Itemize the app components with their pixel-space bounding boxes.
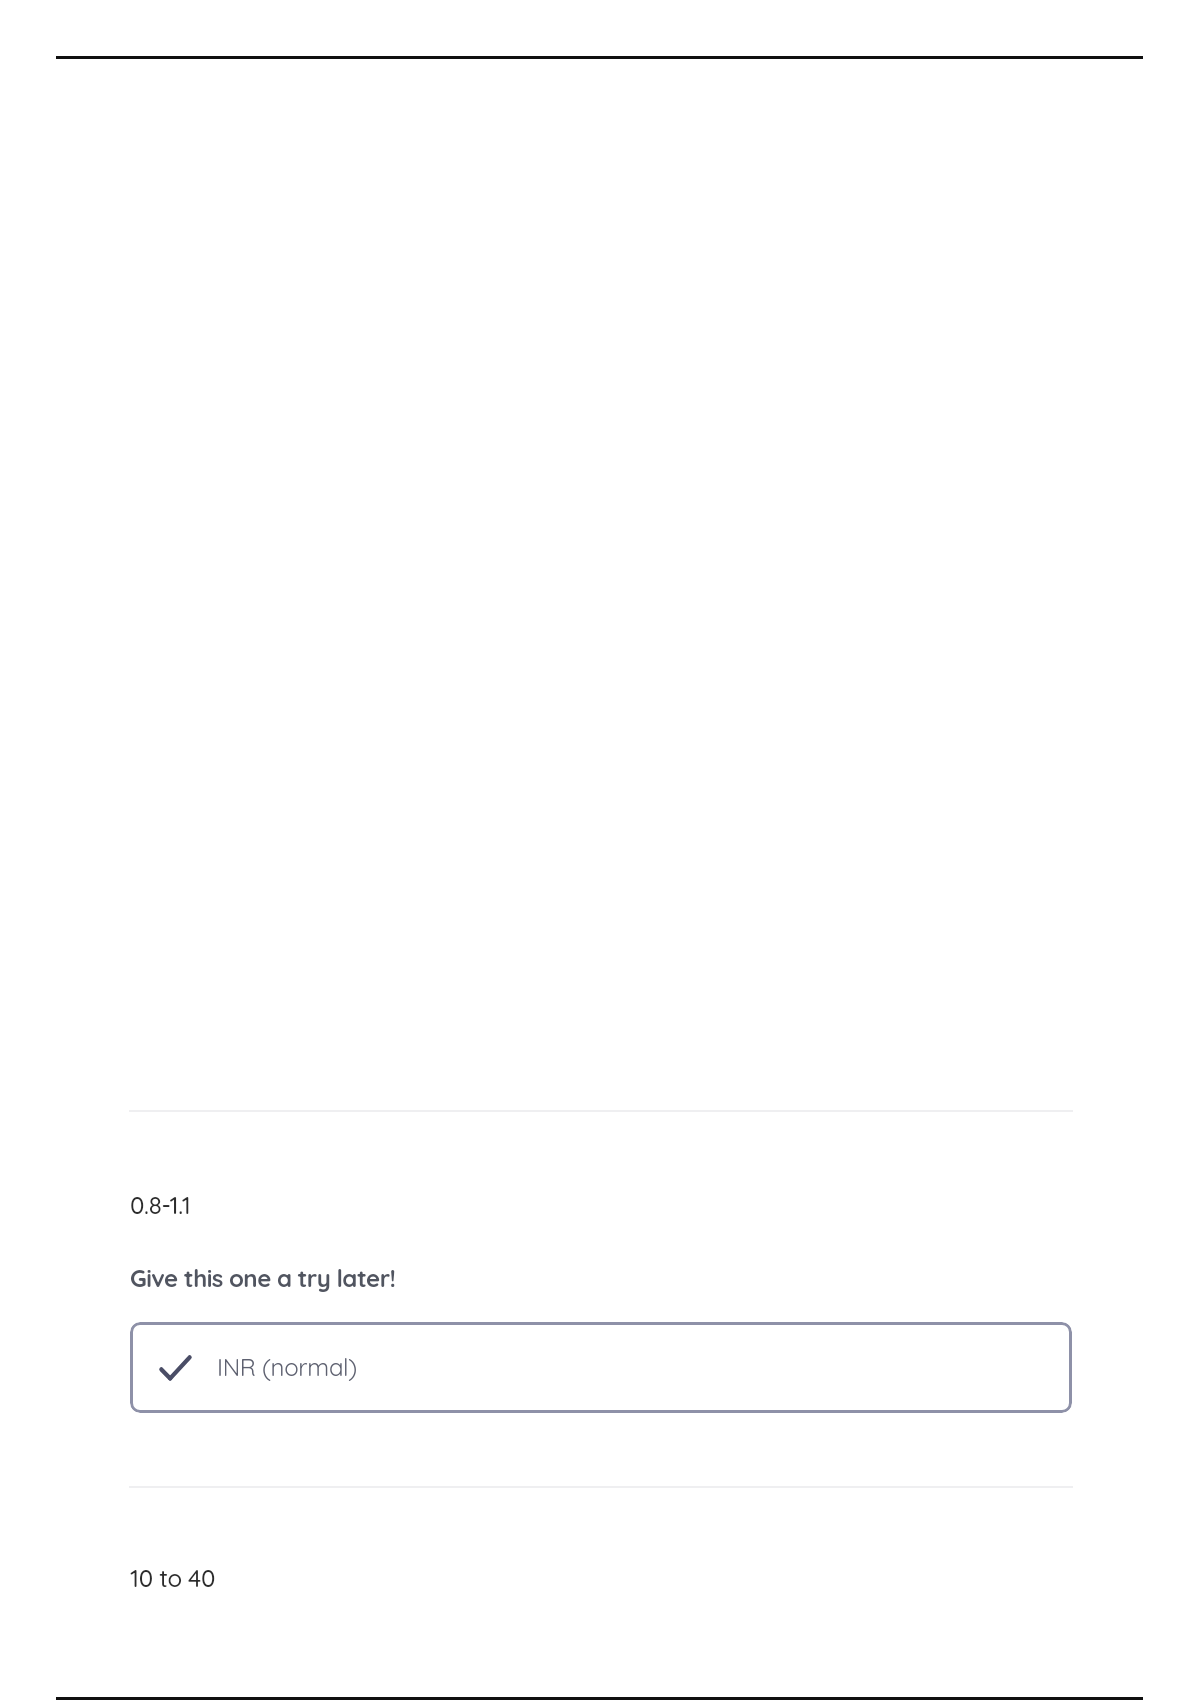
staticText: INR (normal) (217, 1352, 358, 1382)
other: Selected (159, 1354, 195, 1381)
staticText: Give this one a try later! (130, 1263, 396, 1293)
staticText: 0.8-1.1 (130, 1190, 191, 1220)
staticText: 10 to 40 (130, 1563, 216, 1593)
button[interactable]: Selected (130, 1322, 1072, 1413)
